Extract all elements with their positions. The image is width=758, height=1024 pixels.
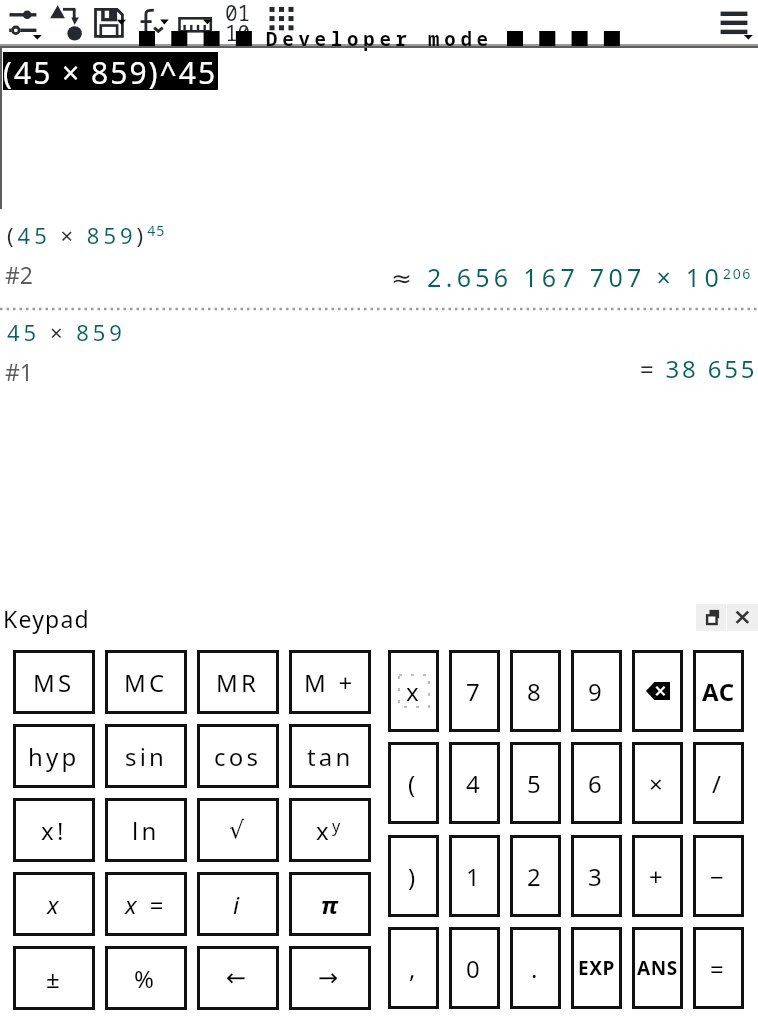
staticText: cos [214, 740, 262, 773]
button[interactable]: = [693, 927, 744, 1009]
staticText: 2 [527, 860, 544, 893]
staticText: (45 × 859)45 [7, 220, 166, 250]
button[interactable]: 7 [449, 650, 500, 732]
staticText: , [409, 952, 419, 985]
staticText: MC [124, 666, 168, 699]
staticText: 7 [466, 675, 483, 708]
button[interactable]: MC [105, 650, 187, 714]
staticText: 01 10 [225, 0, 251, 43]
button[interactable]: 2 [510, 835, 561, 917]
staticText: x [47, 888, 62, 921]
button[interactable]: 8 [510, 650, 561, 732]
button[interactable]: ln [105, 798, 187, 862]
button[interactable]: x! [13, 798, 95, 862]
staticText: EXP [578, 955, 615, 981]
button[interactable]: 45 × 859 [0, 310, 758, 405]
button[interactable]: π [289, 872, 371, 936]
staticText: x [406, 675, 422, 708]
button[interactable]: AC [693, 650, 744, 732]
staticText: MS [33, 666, 75, 699]
button[interactable]: x [388, 650, 439, 732]
button[interactable]: , [388, 927, 439, 1009]
staticText: ← [226, 964, 250, 992]
button[interactable]: Close window [727, 604, 758, 631]
button[interactable]: √ [197, 798, 279, 862]
staticText: / [712, 767, 725, 800]
staticText: → [318, 964, 342, 992]
button[interactable]: / [693, 742, 744, 824]
button[interactable]: Save [90, 0, 134, 44]
staticText: Keypad [3, 603, 90, 634]
staticText: 1 [466, 860, 483, 893]
button[interactable]: ± [13, 946, 95, 1010]
staticText: π [321, 888, 339, 921]
button[interactable]: sin [105, 724, 187, 788]
staticText: . [531, 952, 541, 985]
button[interactable]: M + [289, 650, 371, 714]
staticText: i [233, 888, 243, 921]
staticText: Developer mode [266, 26, 493, 52]
staticText: ≈ 2.656 167 707 × 10206 [391, 260, 752, 294]
button[interactable]: ( [388, 742, 439, 824]
button[interactable]: 9 [571, 650, 622, 732]
button[interactable]: Convert [46, 0, 90, 44]
staticText: AC [702, 675, 735, 708]
button[interactable]: × [632, 742, 683, 824]
staticText: ) [408, 860, 419, 893]
button[interactable]: . [510, 927, 561, 1009]
button[interactable]: ← [197, 946, 279, 1010]
button[interactable]: MS [13, 650, 95, 714]
button[interactable]: x [13, 872, 95, 936]
staticText: ln [132, 814, 160, 847]
button[interactable]: i [197, 872, 279, 936]
button[interactable]: ANS [632, 927, 683, 1009]
button[interactable] [632, 650, 683, 732]
staticText: 6 [588, 767, 605, 800]
button[interactable]: Settings [0, 0, 46, 44]
button[interactable]: hyp [13, 724, 95, 788]
staticText: ± [46, 962, 63, 995]
button[interactable]: cos [197, 724, 279, 788]
button[interactable]: Keypad layout [262, 0, 300, 44]
staticText: x! [41, 814, 67, 847]
staticText: ANS [637, 955, 678, 981]
button[interactable]: Binary [220, 0, 258, 44]
staticText: x = [125, 888, 167, 921]
button[interactable]: → [289, 946, 371, 1010]
staticText: ( [408, 767, 419, 800]
staticText: xy [316, 814, 344, 847]
button[interactable]: Units [176, 0, 220, 44]
staticText: + [649, 860, 666, 893]
staticText: − [710, 860, 727, 893]
button[interactable]: 1 [449, 835, 500, 917]
button[interactable]: Functions [134, 0, 178, 44]
button[interactable]: Restore window [696, 604, 726, 631]
button[interactable]: x = [105, 872, 187, 936]
staticText: 4 [466, 767, 483, 800]
staticText: 5 [527, 767, 544, 800]
button[interactable]: (45 × 859)45 [0, 213, 758, 308]
button[interactable]: 3 [571, 835, 622, 917]
button[interactable]: tan [289, 724, 371, 788]
staticText: 8 [527, 675, 544, 708]
button[interactable]: xy [289, 798, 371, 862]
staticText: #1 [5, 356, 34, 387]
staticText: 45 × 859 [7, 317, 126, 347]
staticText: sin [125, 740, 168, 773]
button[interactable]: 4 [449, 742, 500, 824]
staticText: hyp [28, 740, 80, 773]
staticText: M + [304, 666, 356, 699]
staticText: 3 [588, 860, 605, 893]
button[interactable]: MR [197, 650, 279, 714]
staticText: × [649, 767, 666, 800]
button[interactable]: EXP [571, 927, 622, 1009]
button[interactable]: 5 [510, 742, 561, 824]
button[interactable]: + [632, 835, 683, 917]
button[interactable]: 6 [571, 742, 622, 824]
button[interactable]: 0 [449, 927, 500, 1009]
staticText: MR [216, 666, 260, 699]
button[interactable]: % [105, 946, 187, 1010]
button[interactable]: − [693, 835, 744, 917]
button[interactable]: Menu [714, 0, 758, 44]
button[interactable]: ) [388, 835, 439, 917]
